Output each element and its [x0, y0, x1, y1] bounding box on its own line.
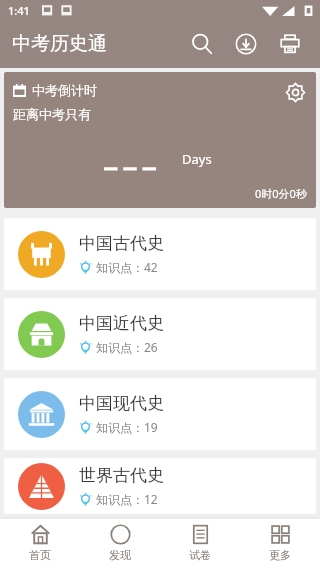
- button[interactable]: 更多: [240, 518, 320, 568]
- staticText: 试卷: [189, 548, 211, 562]
- staticText: 1:41: [8, 3, 30, 18]
- staticText: 发现: [109, 548, 131, 562]
- button[interactable]: 中国古代史: [4, 218, 316, 290]
- button[interactable]: Settings: [280, 77, 310, 107]
- button[interactable]: 试卷: [160, 518, 240, 568]
- staticText: 知识点：26: [96, 339, 158, 355]
- button[interactable]: 首页: [0, 518, 80, 568]
- button[interactable]: Download: [224, 22, 268, 66]
- staticText: 0时0分0秒: [255, 186, 307, 201]
- button[interactable]: Print: [268, 22, 312, 66]
- button[interactable]: 中国近代史: [4, 298, 316, 370]
- staticText: 更多: [269, 548, 291, 562]
- staticText: 距离中考只有: [13, 106, 91, 122]
- staticText: 知识点：19: [96, 419, 158, 435]
- button[interactable]: 中国现代史: [4, 378, 316, 450]
- staticText: 中国古代史: [79, 233, 164, 254]
- staticText: 世界古代史: [79, 465, 164, 486]
- staticText: Days: [182, 150, 212, 168]
- button[interactable]: 中考倒计时: [4, 72, 316, 208]
- staticText: 中考倒计时: [32, 82, 97, 98]
- button[interactable]: 发现: [80, 518, 160, 568]
- staticText: 知识点：42: [96, 259, 158, 275]
- staticText: 首页: [29, 548, 51, 562]
- staticText: 知识点：12: [96, 491, 158, 507]
- staticText: 中考历史通: [12, 32, 107, 56]
- staticText: 中国现代史: [79, 393, 164, 414]
- button[interactable]: Search: [180, 22, 224, 66]
- staticText: 中国近代史: [79, 313, 164, 334]
- button[interactable]: 世界古代史: [4, 458, 316, 514]
